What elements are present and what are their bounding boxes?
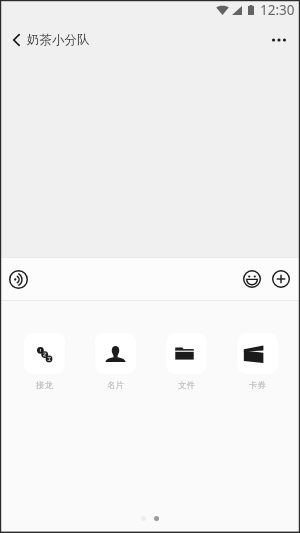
button[interactable]: 接龙 bbox=[24, 333, 65, 391]
staticText: 名片 bbox=[107, 380, 124, 391]
button[interactable]: Emoji bbox=[235, 262, 265, 296]
button[interactable]: Back bbox=[0, 32, 96, 48]
staticText: 奶茶小分队 bbox=[27, 32, 90, 48]
button[interactable]: More options bbox=[258, 28, 300, 52]
other: Back bbox=[13, 34, 20, 46]
staticText: 接龙 bbox=[36, 380, 53, 391]
button[interactable]: More functions bbox=[265, 262, 297, 296]
button[interactable]: 文件 bbox=[166, 333, 207, 391]
staticText: 12:30 bbox=[260, 1, 295, 19]
button[interactable]: 卡券 bbox=[237, 333, 278, 391]
staticText: 文件 bbox=[178, 380, 195, 391]
button[interactable]: 名片 bbox=[95, 333, 136, 391]
button[interactable]: Voice input bbox=[0, 270, 37, 289]
staticText: 卡券 bbox=[249, 380, 266, 391]
